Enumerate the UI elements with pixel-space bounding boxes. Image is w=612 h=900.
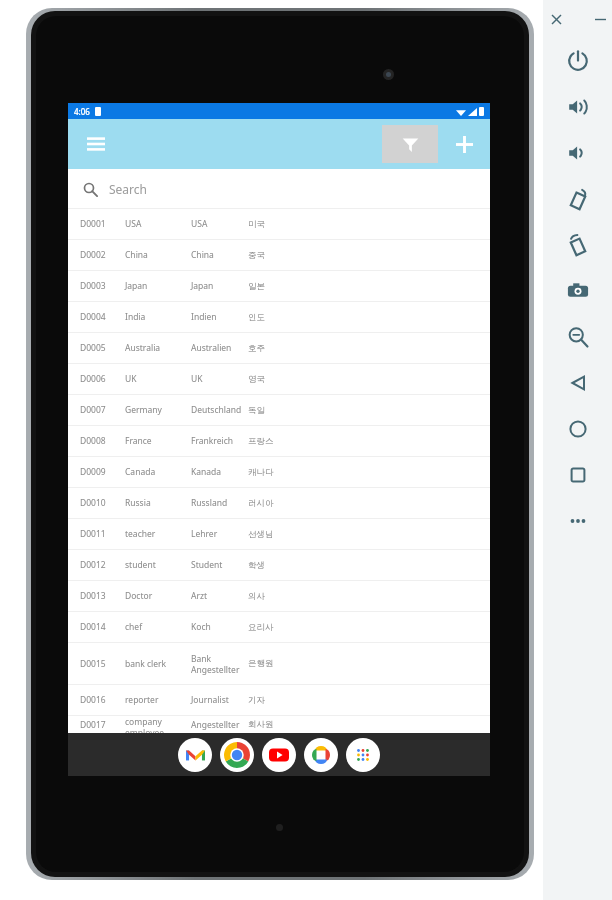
staticText: 미국 [248, 219, 265, 230]
staticText: Canada [125, 466, 156, 478]
staticText: 프랑스 [248, 436, 274, 447]
button[interactable]: D0007 [68, 394, 490, 425]
staticText: 러시아 [248, 498, 274, 509]
staticText: Angestellter [191, 719, 240, 731]
button[interactable]: D0003 [68, 270, 490, 301]
button[interactable]: Chrome [220, 738, 254, 772]
button[interactable]: YouTube [262, 738, 296, 772]
staticText: 캐나다 [248, 467, 274, 478]
staticText: reporter [125, 694, 159, 706]
staticText: Russia [125, 497, 151, 509]
button[interactable]: Back [543, 360, 612, 406]
staticText: company employee [125, 716, 191, 733]
staticText: Deutschland [191, 404, 242, 416]
staticText: D0008 [80, 435, 106, 447]
staticText: France [125, 435, 152, 447]
button[interactable]: Overview [543, 452, 612, 498]
staticText: Arzt [191, 590, 208, 602]
staticText: D0001 [80, 218, 106, 230]
staticText: China [125, 249, 148, 261]
button[interactable]: All apps [346, 738, 380, 772]
button[interactable]: Home [543, 406, 612, 452]
staticText: D0006 [80, 373, 106, 385]
staticText: 기자 [248, 695, 265, 706]
staticText: 4:06 [74, 106, 90, 117]
button[interactable]: Search [68, 169, 490, 208]
button[interactable]: Power [543, 38, 612, 84]
button[interactable]: D0005 [68, 332, 490, 363]
staticText: Koch [191, 621, 211, 633]
staticText: India [125, 311, 146, 323]
staticText: bank clerk [125, 658, 167, 670]
staticText: Journalist [191, 694, 229, 706]
staticText: 일본 [248, 281, 265, 292]
staticText: Japan [125, 280, 148, 292]
button[interactable]: Open navigation menu [78, 126, 114, 162]
staticText: D0014 [80, 621, 106, 633]
button[interactable]: Add [444, 124, 484, 164]
staticText: D0013 [80, 590, 106, 602]
staticText: student [125, 559, 156, 571]
staticText: Doctor [125, 590, 153, 602]
staticText: D0011 [80, 528, 106, 540]
button[interactable]: D0001 [68, 208, 490, 239]
staticText: UK [125, 373, 137, 385]
button[interactable]: Rotate right [543, 222, 612, 268]
staticText: D0005 [80, 342, 106, 354]
staticText: 독일 [248, 405, 265, 416]
button[interactable]: D0006 [68, 363, 490, 394]
staticText: 회사원 [248, 719, 274, 730]
staticText: Lehrer [191, 528, 218, 540]
staticText: 요리사 [248, 622, 274, 633]
button[interactable]: Volume up [543, 84, 612, 130]
staticText: Frankreich [191, 435, 233, 447]
staticText: D0002 [80, 249, 106, 261]
button[interactable]: Google Photos [304, 738, 338, 772]
staticText: Australien [191, 342, 232, 354]
button[interactable]: Rotate left [543, 176, 612, 222]
staticText: Australia [125, 342, 161, 354]
staticText: chef [125, 621, 143, 633]
button[interactable]: D0017 [68, 715, 490, 733]
button[interactable]: D0011 [68, 518, 490, 549]
button[interactable]: D0012 [68, 549, 490, 580]
button[interactable]: D0009 [68, 456, 490, 487]
staticText: Bank Angestellter [191, 653, 248, 675]
button[interactable]: D0004 [68, 301, 490, 332]
staticText: Student [191, 559, 223, 571]
button[interactable]: D0016 [68, 684, 490, 715]
button[interactable]: D0013 [68, 580, 490, 611]
button[interactable]: Zoom [543, 314, 612, 360]
staticText: D0012 [80, 559, 106, 571]
staticText: UK [191, 373, 203, 385]
staticText: 은행원 [248, 658, 274, 669]
button[interactable]: D0010 [68, 487, 490, 518]
staticText: D0003 [80, 280, 106, 292]
staticText: 의사 [248, 591, 265, 602]
staticText: Germany [125, 404, 162, 416]
staticText: D0009 [80, 466, 106, 478]
staticText: 학생 [248, 560, 265, 571]
staticText: 중국 [248, 250, 265, 261]
staticText: 호주 [248, 343, 265, 354]
staticText: D0017 [80, 719, 106, 731]
button[interactable]: Minimize [590, 9, 610, 29]
staticText: D0004 [80, 311, 106, 323]
button[interactable]: Take screenshot [543, 268, 612, 314]
button[interactable]: D0015 [68, 642, 490, 684]
staticText: D0016 [80, 694, 106, 706]
button[interactable]: Gmail [178, 738, 212, 772]
button[interactable]: Filter [382, 125, 438, 163]
staticText: 인도 [248, 312, 265, 323]
button[interactable]: D0014 [68, 611, 490, 642]
staticText: Search [109, 181, 147, 197]
staticText: D0010 [80, 497, 106, 509]
staticText: Japan [191, 280, 214, 292]
button[interactable]: D0002 [68, 239, 490, 270]
button[interactable]: More options [543, 498, 612, 544]
button[interactable]: Close [546, 9, 566, 29]
button[interactable]: Volume down [543, 130, 612, 176]
staticText: Russland [191, 497, 228, 509]
button[interactable]: D0008 [68, 425, 490, 456]
staticText: Indien [191, 311, 217, 323]
